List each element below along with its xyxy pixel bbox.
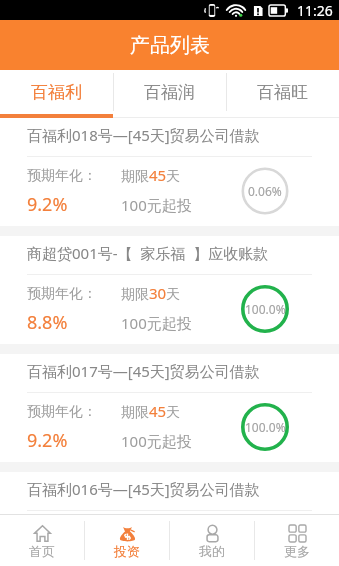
button[interactable]: 投资 bbox=[85, 515, 169, 566]
staticText: 百福利018号—[45天]贸易公司借款 bbox=[27, 125, 260, 145]
staticText: 100.0% bbox=[245, 534, 286, 550]
button[interactable]: 更多 bbox=[255, 515, 339, 566]
staticText: 百福润 bbox=[144, 82, 195, 103]
staticText: 100元起投 bbox=[121, 313, 192, 333]
staticText: 预期年化： bbox=[27, 403, 97, 421]
staticText: 11:26 bbox=[297, 1, 333, 20]
staticText: 100元起投 bbox=[121, 549, 192, 566]
button[interactable]: 我的 bbox=[170, 515, 254, 566]
staticText: 8.8% bbox=[27, 310, 68, 335]
staticText: 产品列表 bbox=[130, 33, 210, 58]
staticText: 期限30天 bbox=[121, 283, 181, 303]
staticText: 百福利017号—[45天]贸易公司借款 bbox=[27, 361, 260, 381]
staticText: 我的 bbox=[199, 543, 225, 559]
staticText: 投资 bbox=[114, 543, 140, 559]
staticText: 商超贷001号-【 家乐福 】应收账款 bbox=[27, 243, 269, 263]
button[interactable]: 百福利018号—[45天]贸易公司借款 bbox=[0, 118, 339, 226]
staticText: 100元起投 bbox=[121, 195, 192, 215]
staticText: 首页 bbox=[29, 543, 55, 559]
button[interactable]: 商超贷001号-【 家乐福 】应收账款 bbox=[0, 236, 339, 344]
staticText: 9.2% bbox=[27, 428, 68, 453]
staticText: 0.06% bbox=[248, 183, 282, 199]
staticText: 百福利016号—[45天]贸易公司借款 bbox=[27, 479, 260, 499]
staticText: 100.0% bbox=[245, 419, 286, 435]
staticText: 百福旺 bbox=[257, 82, 308, 103]
button[interactable]: 百福利016号—[45天]贸易公司借款 bbox=[0, 472, 339, 514]
button[interactable]: 百福利 bbox=[0, 70, 113, 114]
staticText: 9.2% bbox=[27, 192, 68, 217]
staticText: 期限45天 bbox=[121, 165, 181, 185]
staticText: 百福利 bbox=[31, 82, 82, 103]
button[interactable]: 百福润 bbox=[113, 70, 226, 114]
staticText: 期限45天 bbox=[121, 519, 181, 539]
staticText: 100元起投 bbox=[121, 431, 192, 451]
staticText: 期限45天 bbox=[121, 401, 181, 421]
button[interactable]: 百福利017号—[45天]贸易公司借款 bbox=[0, 354, 339, 462]
staticText: 预期年化： bbox=[27, 167, 97, 185]
staticText: 预期年化： bbox=[27, 285, 97, 303]
staticText: 9.2% bbox=[27, 546, 68, 566]
staticText: 100.0% bbox=[245, 301, 286, 317]
button[interactable]: 百福旺 bbox=[226, 70, 339, 114]
button[interactable]: 首页 bbox=[0, 515, 84, 566]
staticText: 更多 bbox=[284, 543, 310, 559]
staticText: 预期年化： bbox=[27, 521, 97, 539]
